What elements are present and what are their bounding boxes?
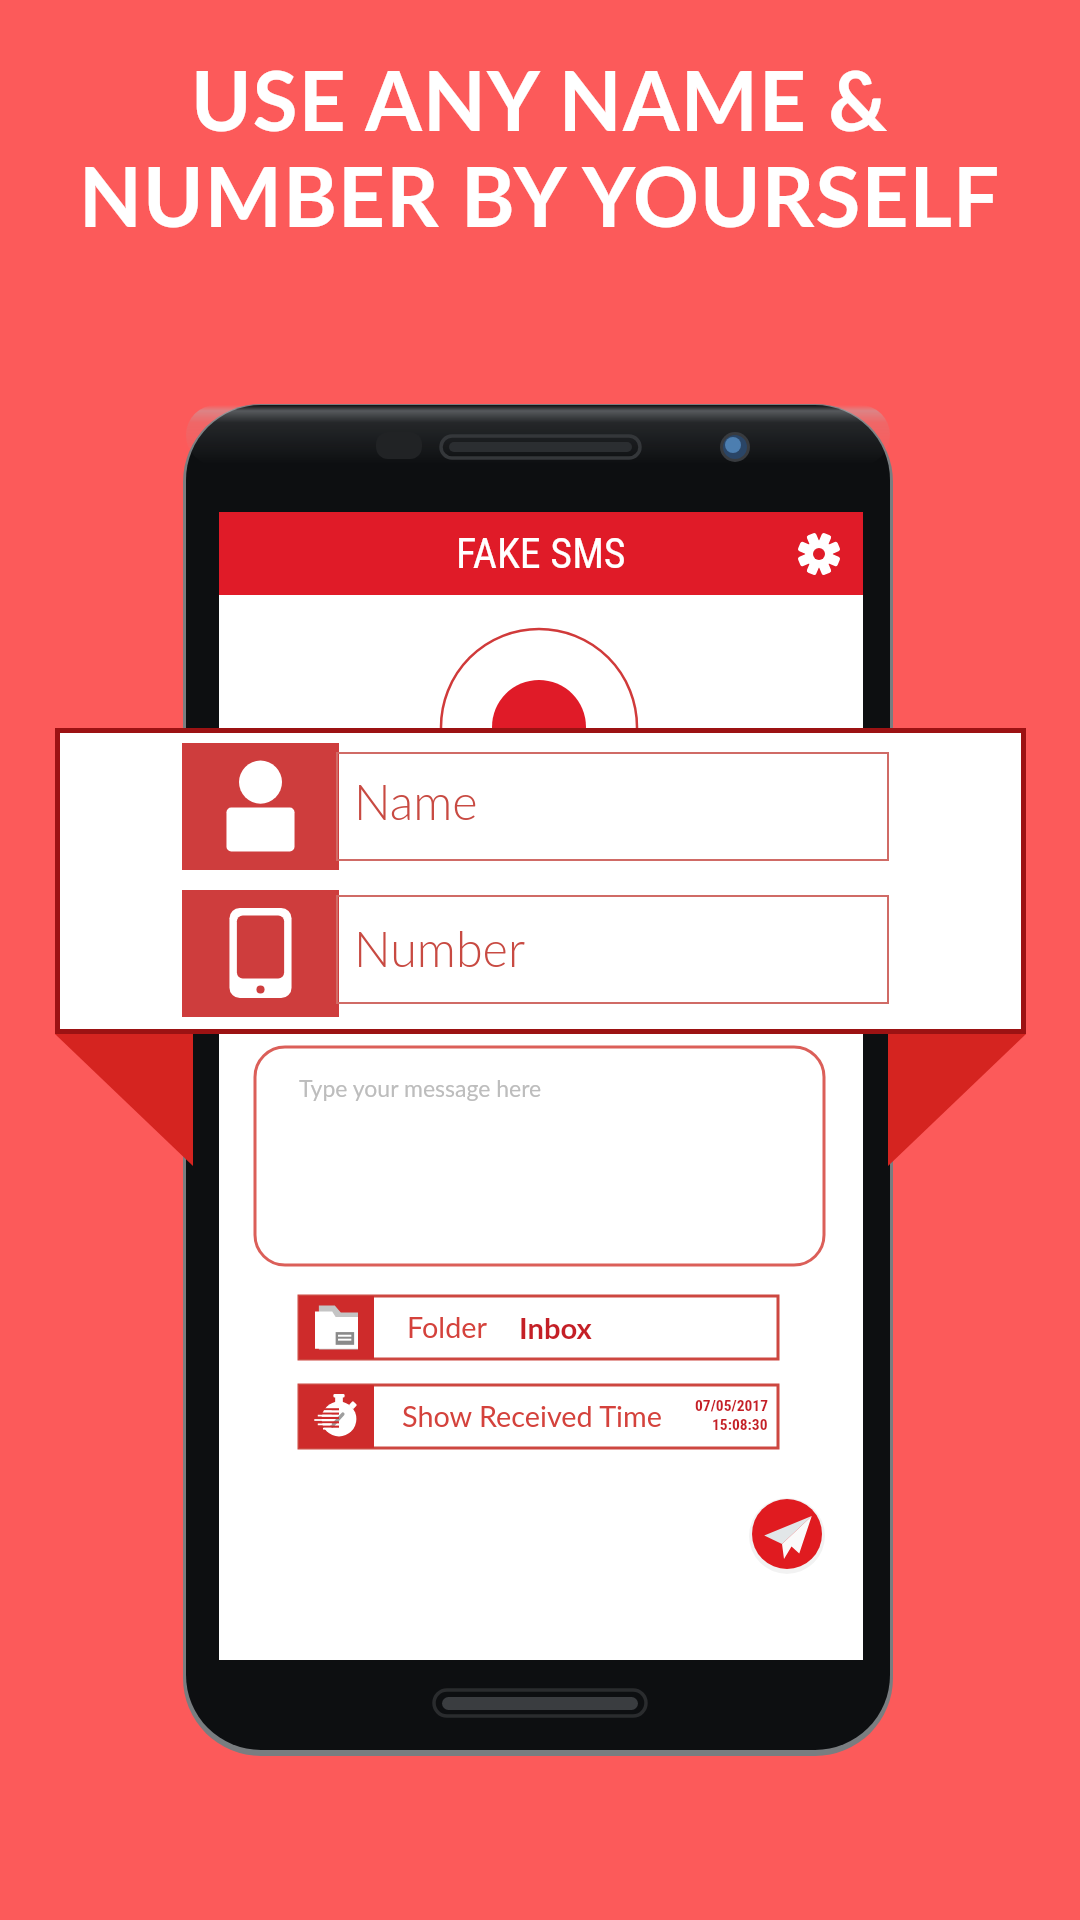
button[interactable]: Show Received Time (299, 1385, 778, 1448)
button[interactable]: Number field (182, 890, 888, 1017)
button[interactable]: Folder Inbox (299, 1296, 778, 1359)
button[interactable]: Send message (752, 1499, 822, 1569)
button[interactable]: Settings (786, 522, 850, 586)
button[interactable]: Name field (182, 743, 888, 870)
button[interactable]: Type your message here (255, 1047, 824, 1265)
